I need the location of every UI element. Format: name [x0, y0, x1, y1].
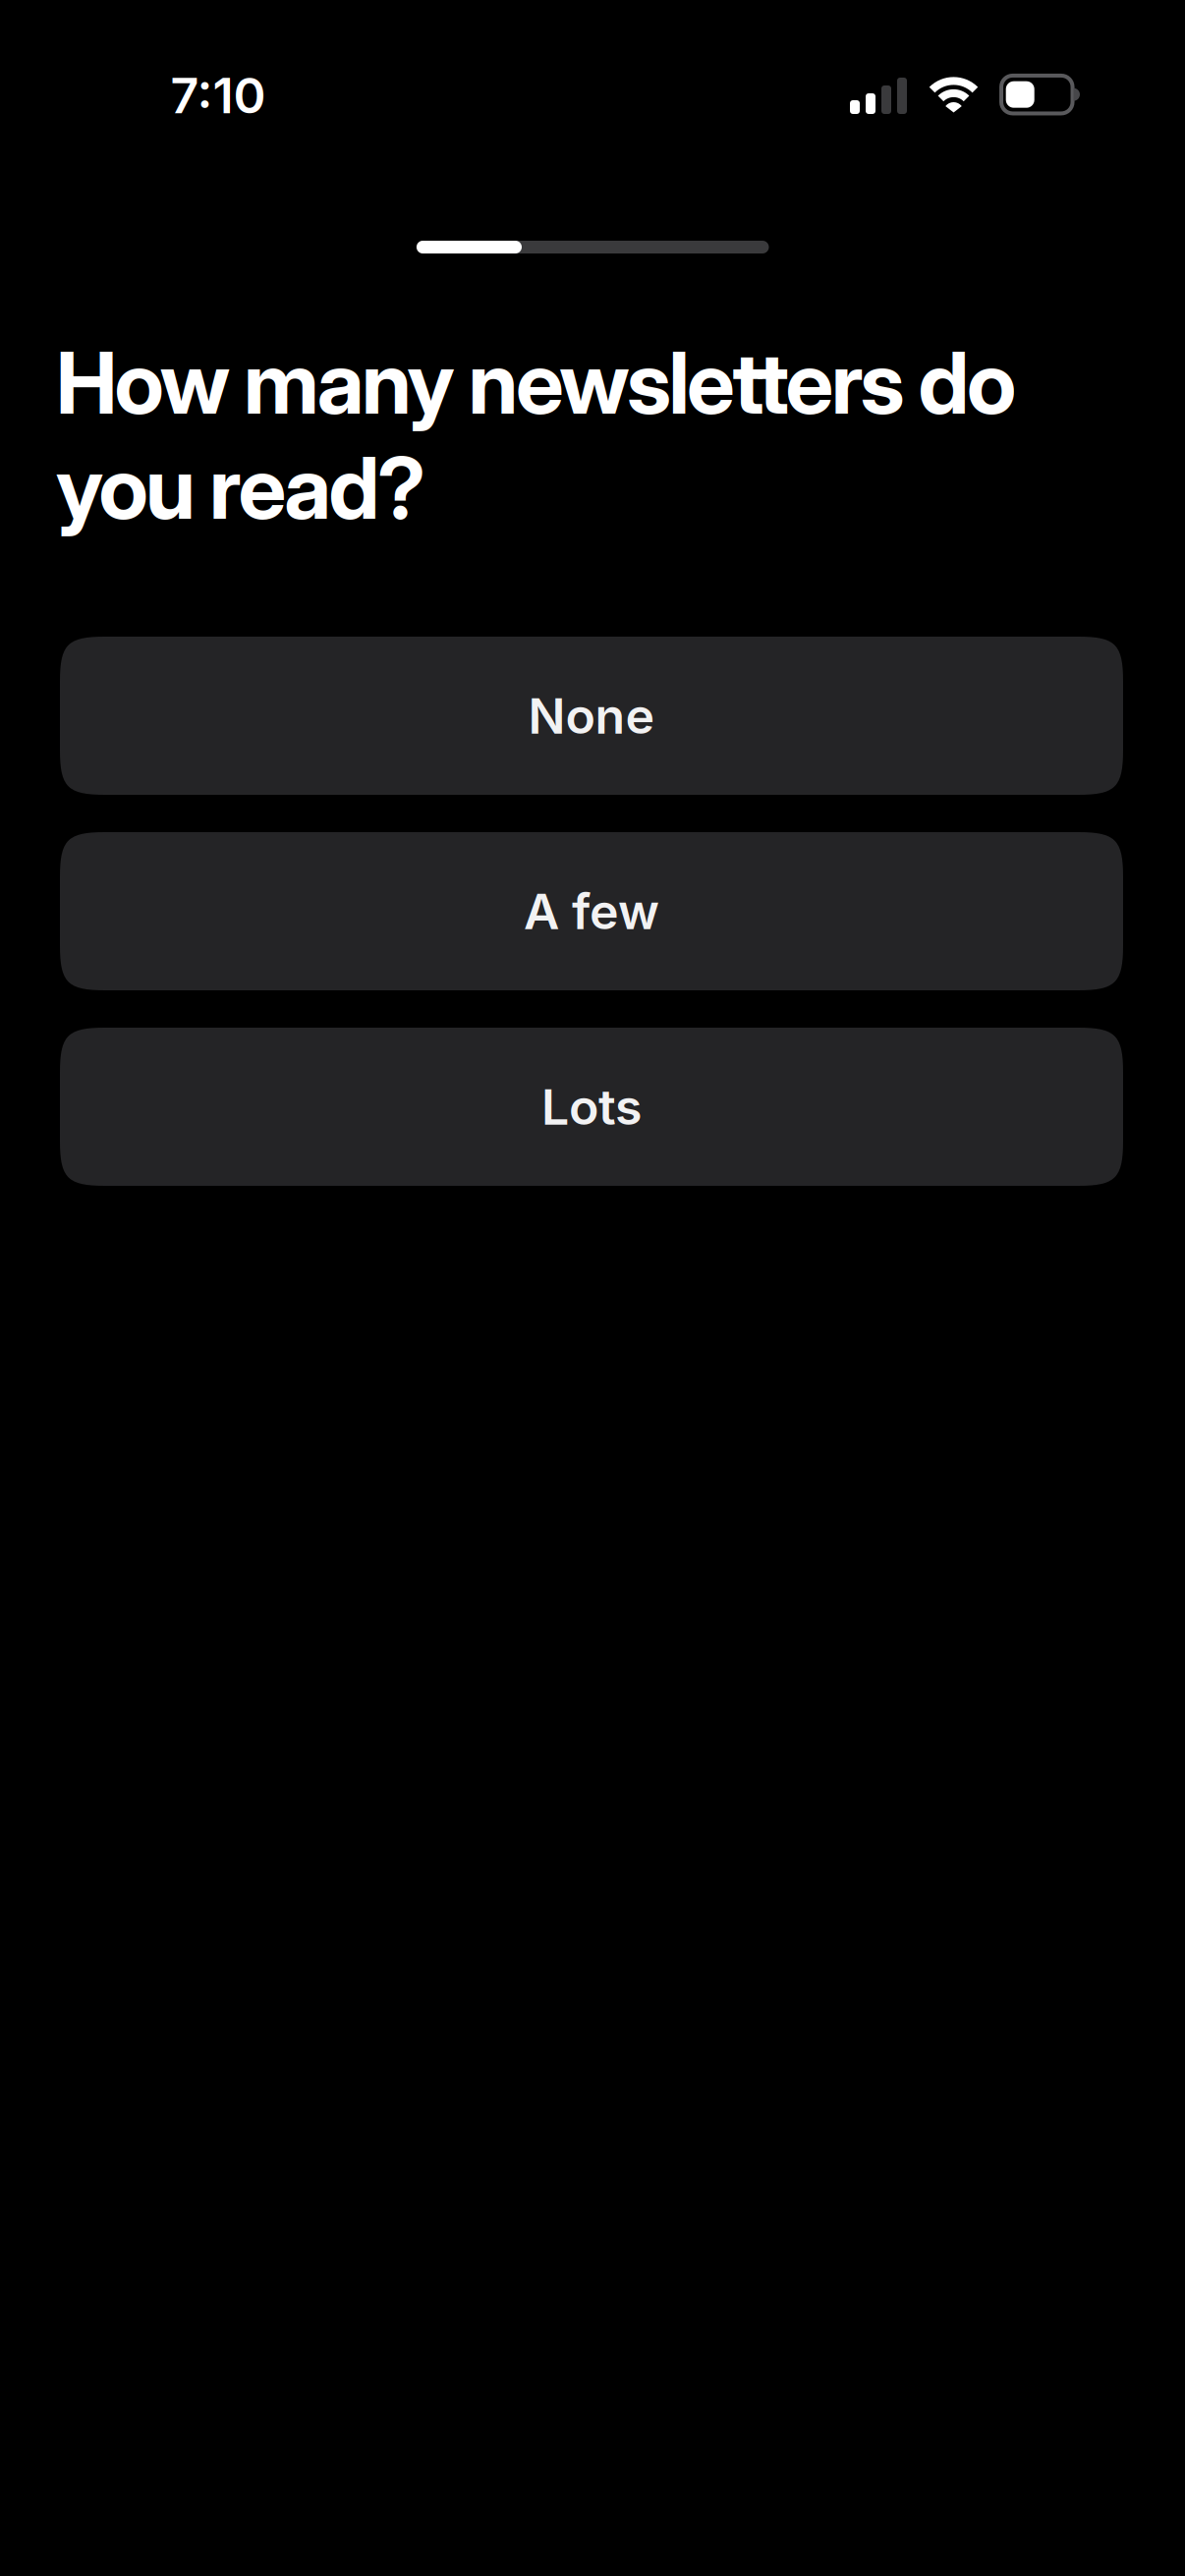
staticText: A few — [524, 882, 659, 941]
staticText: None — [528, 686, 655, 745]
staticText: 7:10 — [170, 66, 266, 125]
staticText: Lots — [541, 1077, 642, 1137]
button[interactable]: A few — [60, 832, 1123, 990]
button[interactable]: None — [60, 637, 1123, 795]
staticText: How many newsletters do — [56, 331, 1016, 434]
button[interactable]: Lots — [60, 1028, 1123, 1186]
staticText: you read? — [56, 436, 425, 539]
